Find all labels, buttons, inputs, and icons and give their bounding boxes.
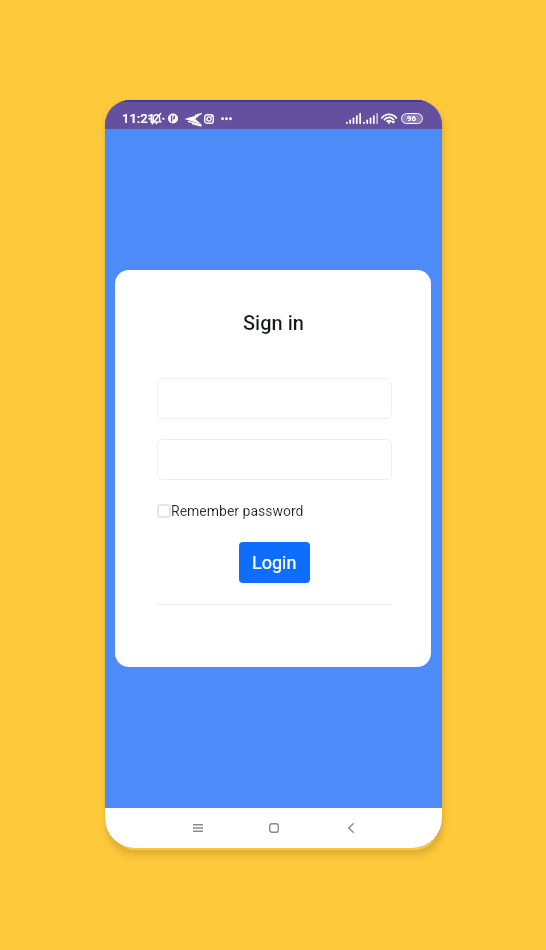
button[interactable] <box>157 378 392 419</box>
staticText: Remember password <box>171 503 304 519</box>
staticText: 11:21 <box>122 111 155 126</box>
staticText: Sign in <box>243 311 304 334</box>
button[interactable]: Remember password <box>157 503 304 519</box>
staticText: Login <box>252 552 297 573</box>
button[interactable] <box>157 439 392 480</box>
staticText: 96 <box>407 114 417 123</box>
button[interactable]: Home <box>251 808 296 848</box>
button[interactable]: Recent apps <box>175 808 220 848</box>
button[interactable]: Login <box>239 542 310 583</box>
button[interactable]: Back <box>328 808 373 848</box>
